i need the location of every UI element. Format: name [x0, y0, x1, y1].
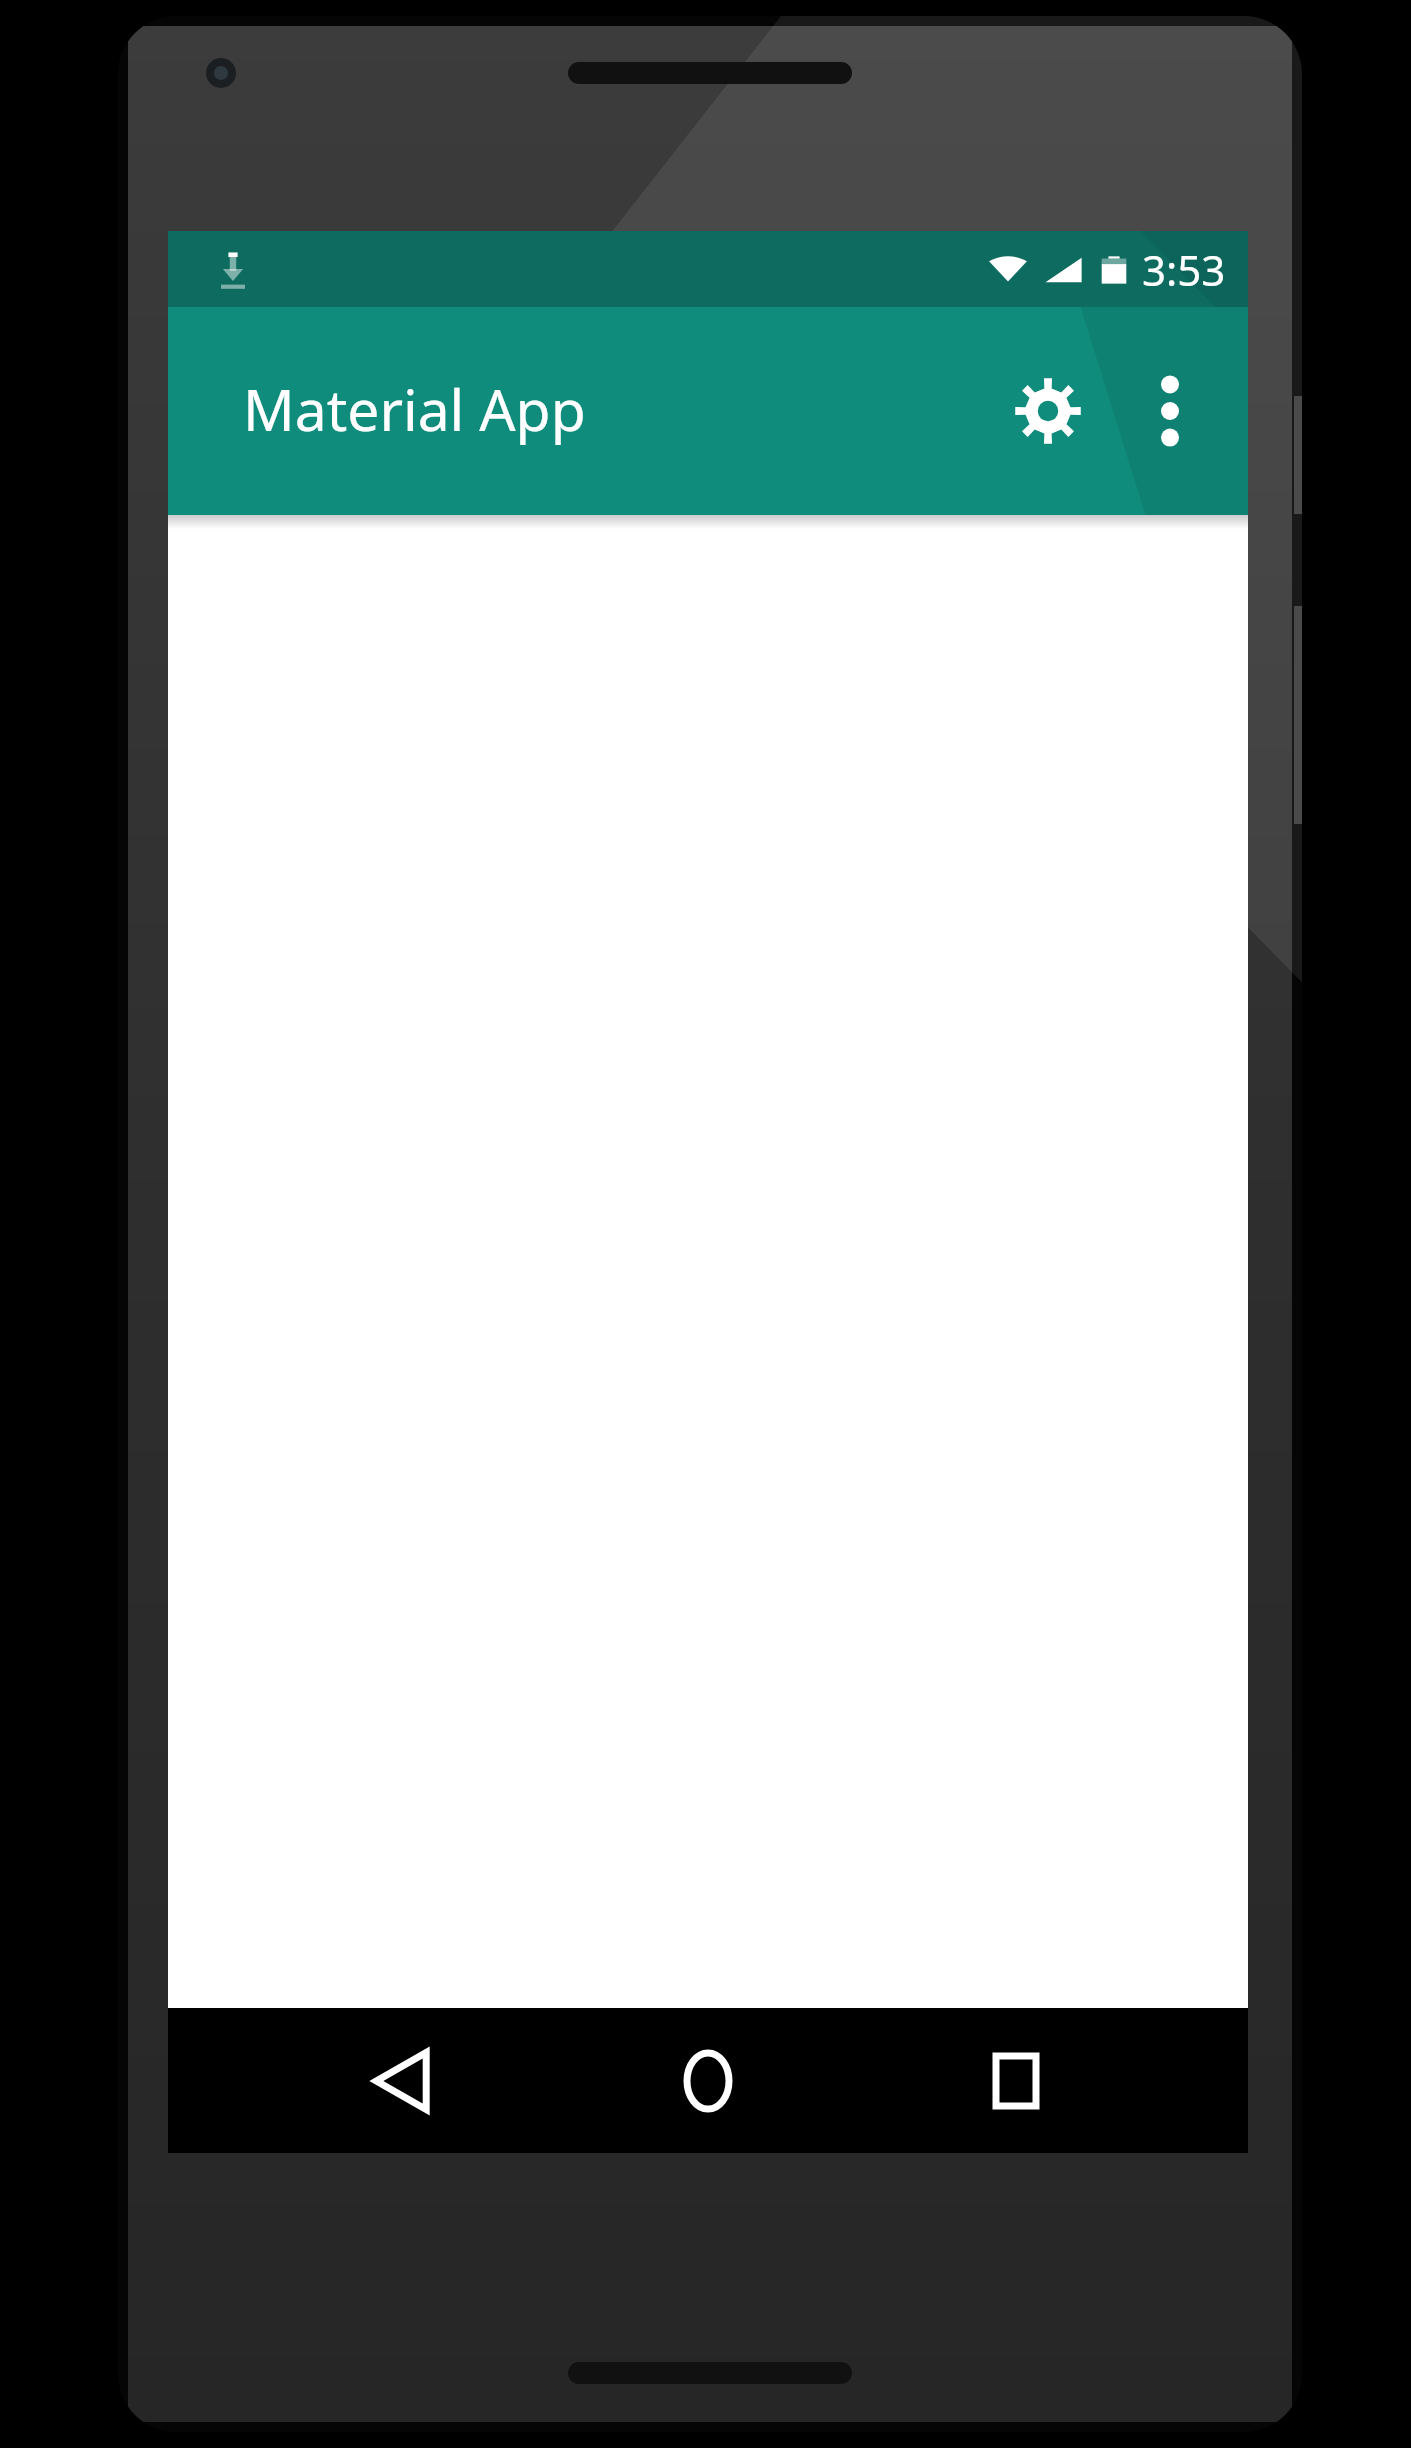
button[interactable]: Recent apps: [941, 2008, 1091, 2153]
staticText: Material App: [243, 370, 586, 448]
button[interactable]: Settings: [992, 355, 1104, 467]
button[interactable]: More options: [1114, 355, 1226, 467]
button[interactable]: Back: [326, 2008, 476, 2153]
button[interactable]: Home: [633, 2008, 783, 2153]
staticText: 3:53: [1142, 241, 1226, 298]
